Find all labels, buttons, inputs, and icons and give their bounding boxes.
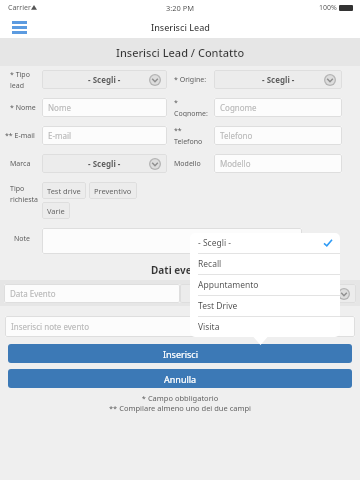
button[interactable] [42, 228, 302, 254]
staticText: ** Telefono [174, 126, 214, 145]
staticText: Tipo richiesta [10, 184, 42, 204]
staticText: ** Compilare almeno uno dei due campi [0, 403, 360, 413]
staticText: Varie [47, 206, 65, 216]
button[interactable]: Telefono [214, 126, 342, 145]
button[interactable]: E-mail [42, 126, 167, 145]
staticText: * Origine: [174, 75, 214, 85]
staticText: Annulla [164, 373, 197, 385]
staticText: Test Drive [198, 300, 238, 312]
staticText: - Scegli - [88, 158, 121, 169]
staticText: Preventivo [94, 186, 132, 196]
staticText: ** E-mail [5, 131, 42, 141]
staticText: E-mail [48, 130, 72, 141]
staticText: Test drive [47, 186, 81, 196]
staticText: Inserisci Lead / Contatto [116, 45, 245, 60]
staticText: Visita [198, 321, 220, 333]
staticText: - Scegli - [252, 288, 285, 299]
staticText: Cognome [220, 102, 257, 113]
staticText: - Scegli - [198, 237, 232, 249]
button[interactable]: Test drive [42, 182, 86, 199]
staticText: Inserisci note evento [11, 321, 90, 332]
staticText: Marca [10, 159, 42, 169]
button[interactable]: Varie [42, 202, 70, 219]
button[interactable]: Inserisci note evento [5, 316, 355, 337]
button[interactable]: - Scegli - [42, 154, 167, 173]
button[interactable]: Nome [42, 98, 167, 117]
staticText: Note [14, 234, 42, 244]
staticText: Appuntamento [198, 279, 259, 291]
staticText: 100% [319, 3, 337, 13]
button[interactable]: - Scegli - [214, 70, 342, 89]
staticText: Data Evento [10, 288, 56, 299]
button[interactable]: Visita [190, 317, 340, 337]
button[interactable]: Menu [10, 19, 29, 36]
staticText: Dati evento [151, 263, 209, 277]
button[interactable]: Test Drive [190, 296, 340, 316]
button[interactable]: Appuntamento [190, 275, 340, 295]
staticText: * Cognome: [174, 98, 214, 117]
staticText: Carrier [8, 3, 31, 13]
button[interactable]: Data Evento [4, 284, 180, 303]
button[interactable]: - Scegli - [42, 70, 167, 89]
staticText: Recall [198, 258, 222, 270]
staticText: Nome [48, 102, 71, 113]
staticText: * Nome [10, 103, 42, 113]
staticText: - Scegli - [88, 74, 121, 85]
button[interactable]: - Scegli - [180, 284, 356, 303]
staticText: Telefono [220, 130, 253, 141]
staticText: * Campo obbligatorio [0, 393, 360, 403]
button[interactable]: - Scegli - [190, 233, 340, 253]
button[interactable]: Recall [190, 254, 340, 274]
staticText: Modello [220, 158, 251, 169]
button[interactable]: Preventivo [89, 182, 137, 199]
staticText: Modello [174, 159, 214, 169]
staticText: Inserisci [163, 348, 198, 360]
button[interactable]: Modello [214, 154, 342, 173]
button[interactable]: Inserisci [8, 344, 352, 363]
staticText: 3:20 PM [166, 3, 195, 13]
staticText: Inserisci Lead [151, 21, 210, 33]
button[interactable]: Annulla [8, 369, 352, 388]
button[interactable]: Cognome [214, 98, 342, 117]
staticText: - Scegli - [262, 74, 295, 85]
staticText: * Tipo lead [10, 70, 42, 89]
